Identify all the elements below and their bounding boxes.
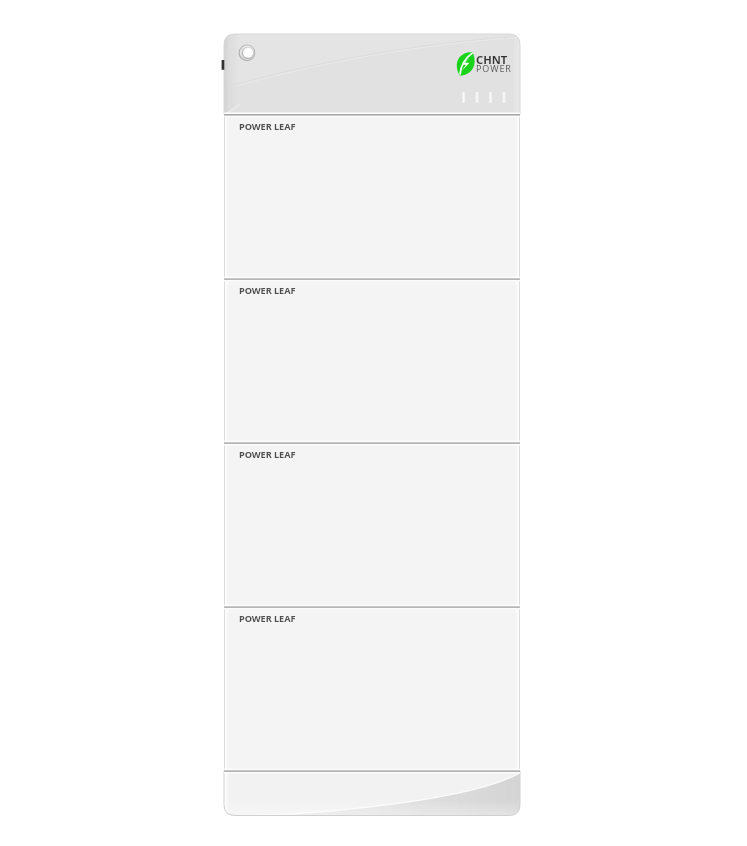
staticText: CHNT bbox=[476, 52, 508, 67]
staticText: POWER bbox=[476, 62, 512, 74]
button[interactable]: POWER LEAF bbox=[224, 115, 520, 279]
staticText: POWER LEAF bbox=[239, 448, 296, 461]
button[interactable]: POWER LEAF bbox=[224, 443, 520, 607]
button[interactable]: CHNT POWER logo bbox=[455, 50, 511, 75]
staticText: POWER LEAF bbox=[239, 612, 296, 625]
staticText: POWER LEAF bbox=[239, 120, 296, 133]
button[interactable]: POWER LEAF bbox=[224, 607, 520, 771]
button[interactable]: Power button bbox=[238, 43, 257, 62]
staticText: POWER LEAF bbox=[239, 284, 296, 297]
button[interactable]: POWER LEAF bbox=[224, 279, 520, 443]
